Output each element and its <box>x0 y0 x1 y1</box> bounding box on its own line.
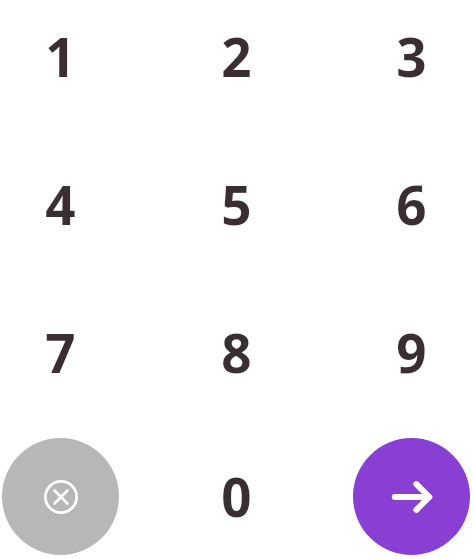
button[interactable]: Clear <box>2 438 119 555</box>
staticText: 8 <box>221 316 252 388</box>
button[interactable]: Submit <box>353 438 470 555</box>
staticText: 9 <box>396 316 427 388</box>
button[interactable]: 6 <box>336 134 474 274</box>
staticText: 0 <box>221 460 252 532</box>
button[interactable]: 7 <box>0 282 135 422</box>
staticText: 6 <box>396 168 427 240</box>
staticText: 2 <box>221 20 252 92</box>
button[interactable]: 2 <box>161 0 311 126</box>
staticText: 5 <box>221 168 252 240</box>
staticText: 7 <box>45 316 76 388</box>
button[interactable]: 4 <box>0 134 135 274</box>
button[interactable]: 8 <box>161 282 311 422</box>
button[interactable]: 0 <box>161 426 311 559</box>
button[interactable]: 9 <box>336 282 474 422</box>
staticText: 4 <box>45 168 76 240</box>
staticText: 3 <box>396 20 427 92</box>
button[interactable]: 5 <box>161 134 311 274</box>
button[interactable]: 1 <box>0 0 135 126</box>
button[interactable]: 3 <box>336 0 474 126</box>
staticText: 1 <box>45 20 76 92</box>
